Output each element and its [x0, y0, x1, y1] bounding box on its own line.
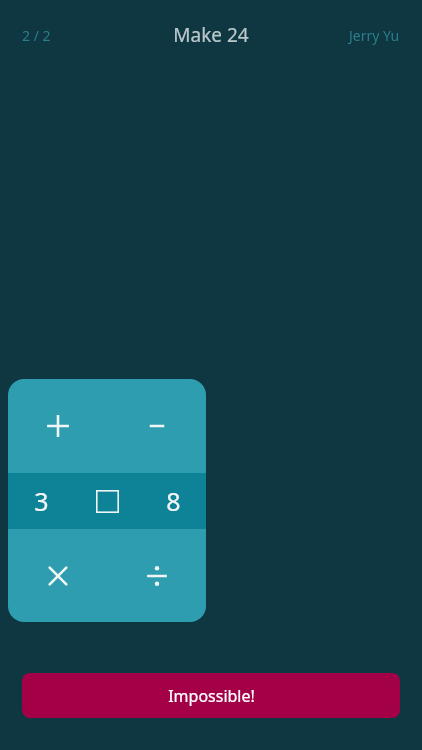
- staticText: 2 / 2: [22, 26, 51, 45]
- button[interactable]: Multiply: [8, 529, 107, 622]
- button[interactable]: 3: [8, 473, 74, 529]
- button[interactable]: Minus: [107, 379, 206, 473]
- button[interactable]: Plus: [8, 379, 107, 473]
- button[interactable]: Impossible!: [22, 673, 400, 718]
- button[interactable]: Jerry Yu: [335, 18, 414, 53]
- staticText: Impossible!: [168, 685, 255, 707]
- button[interactable]: Empty slot: [74, 473, 140, 529]
- staticText: 3: [34, 484, 49, 518]
- button[interactable]: 8: [140, 473, 206, 529]
- staticText: Make 24: [173, 22, 249, 48]
- button[interactable]: Divide: [107, 529, 206, 622]
- staticText: Jerry Yu: [349, 26, 400, 45]
- staticText: 8: [166, 484, 181, 518]
- button[interactable]: 2 / 2: [8, 18, 65, 53]
